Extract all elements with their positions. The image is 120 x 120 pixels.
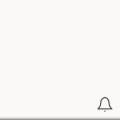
button[interactable]: Notifications — [98, 96, 120, 120]
